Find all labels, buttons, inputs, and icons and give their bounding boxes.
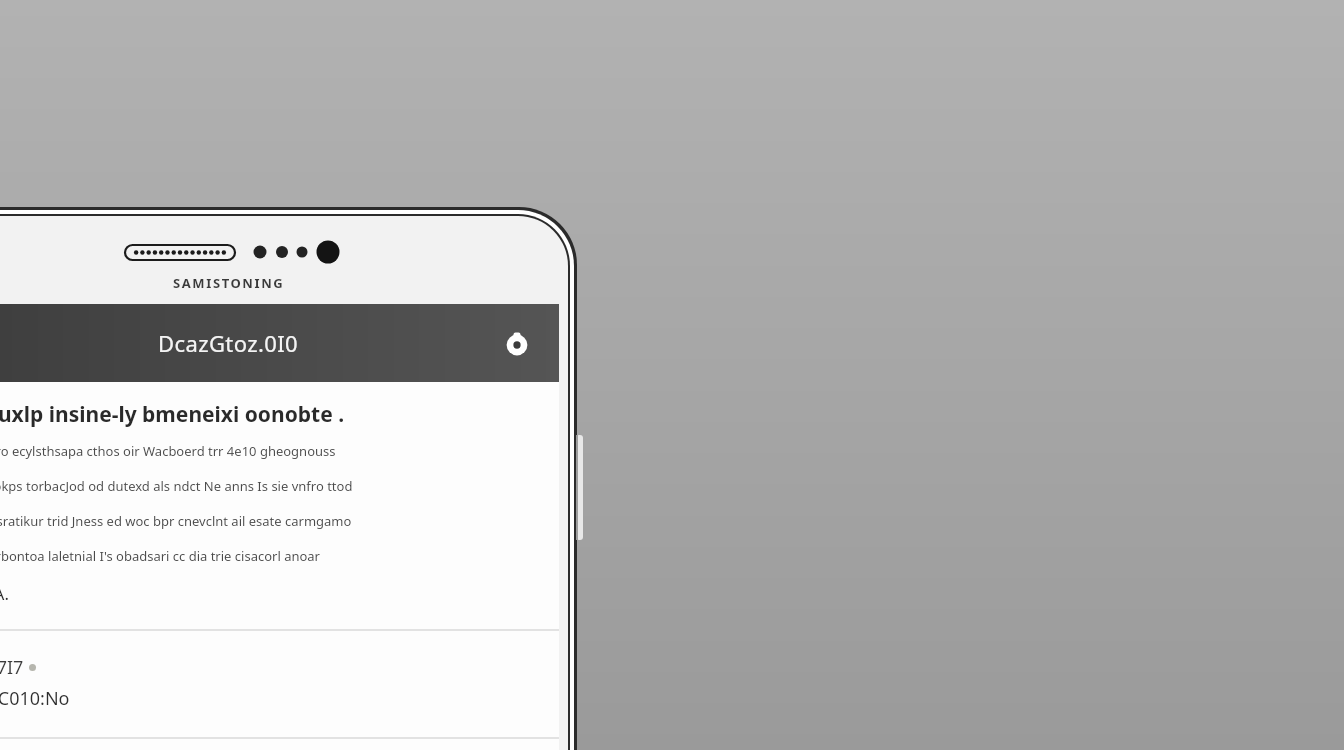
staticText: loc cin twox sratikur trid Jness ed woc …: [0, 512, 352, 530]
staticText: DcazGtoz.0I0: [158, 328, 299, 358]
button[interactable]: Timer: [493, 319, 541, 367]
staticText: SAMISTONING: [173, 274, 285, 292]
button[interactable]: KJIITO DJ7I7: [0, 631, 559, 737]
staticText: Lihno'xuxlp insine-ly bmeneixi oonobte .: [0, 400, 345, 429]
button[interactable]: Power button: [576, 435, 583, 540]
staticText: KJIITO DJ7I7: [0, 655, 24, 680]
staticText: Gavvirne sNrbontoa laletnial I's obadsar…: [0, 547, 320, 565]
staticText: Rar. INI SC010:No: [0, 686, 70, 711]
staticText: bovd yddrtaro ecylsthsapa cthos oir Wacb…: [0, 442, 336, 460]
staticText: Beac sint nrokps torbacJod od dutexd als…: [0, 477, 353, 495]
staticText: HUTIWIZA.: [0, 582, 9, 605]
